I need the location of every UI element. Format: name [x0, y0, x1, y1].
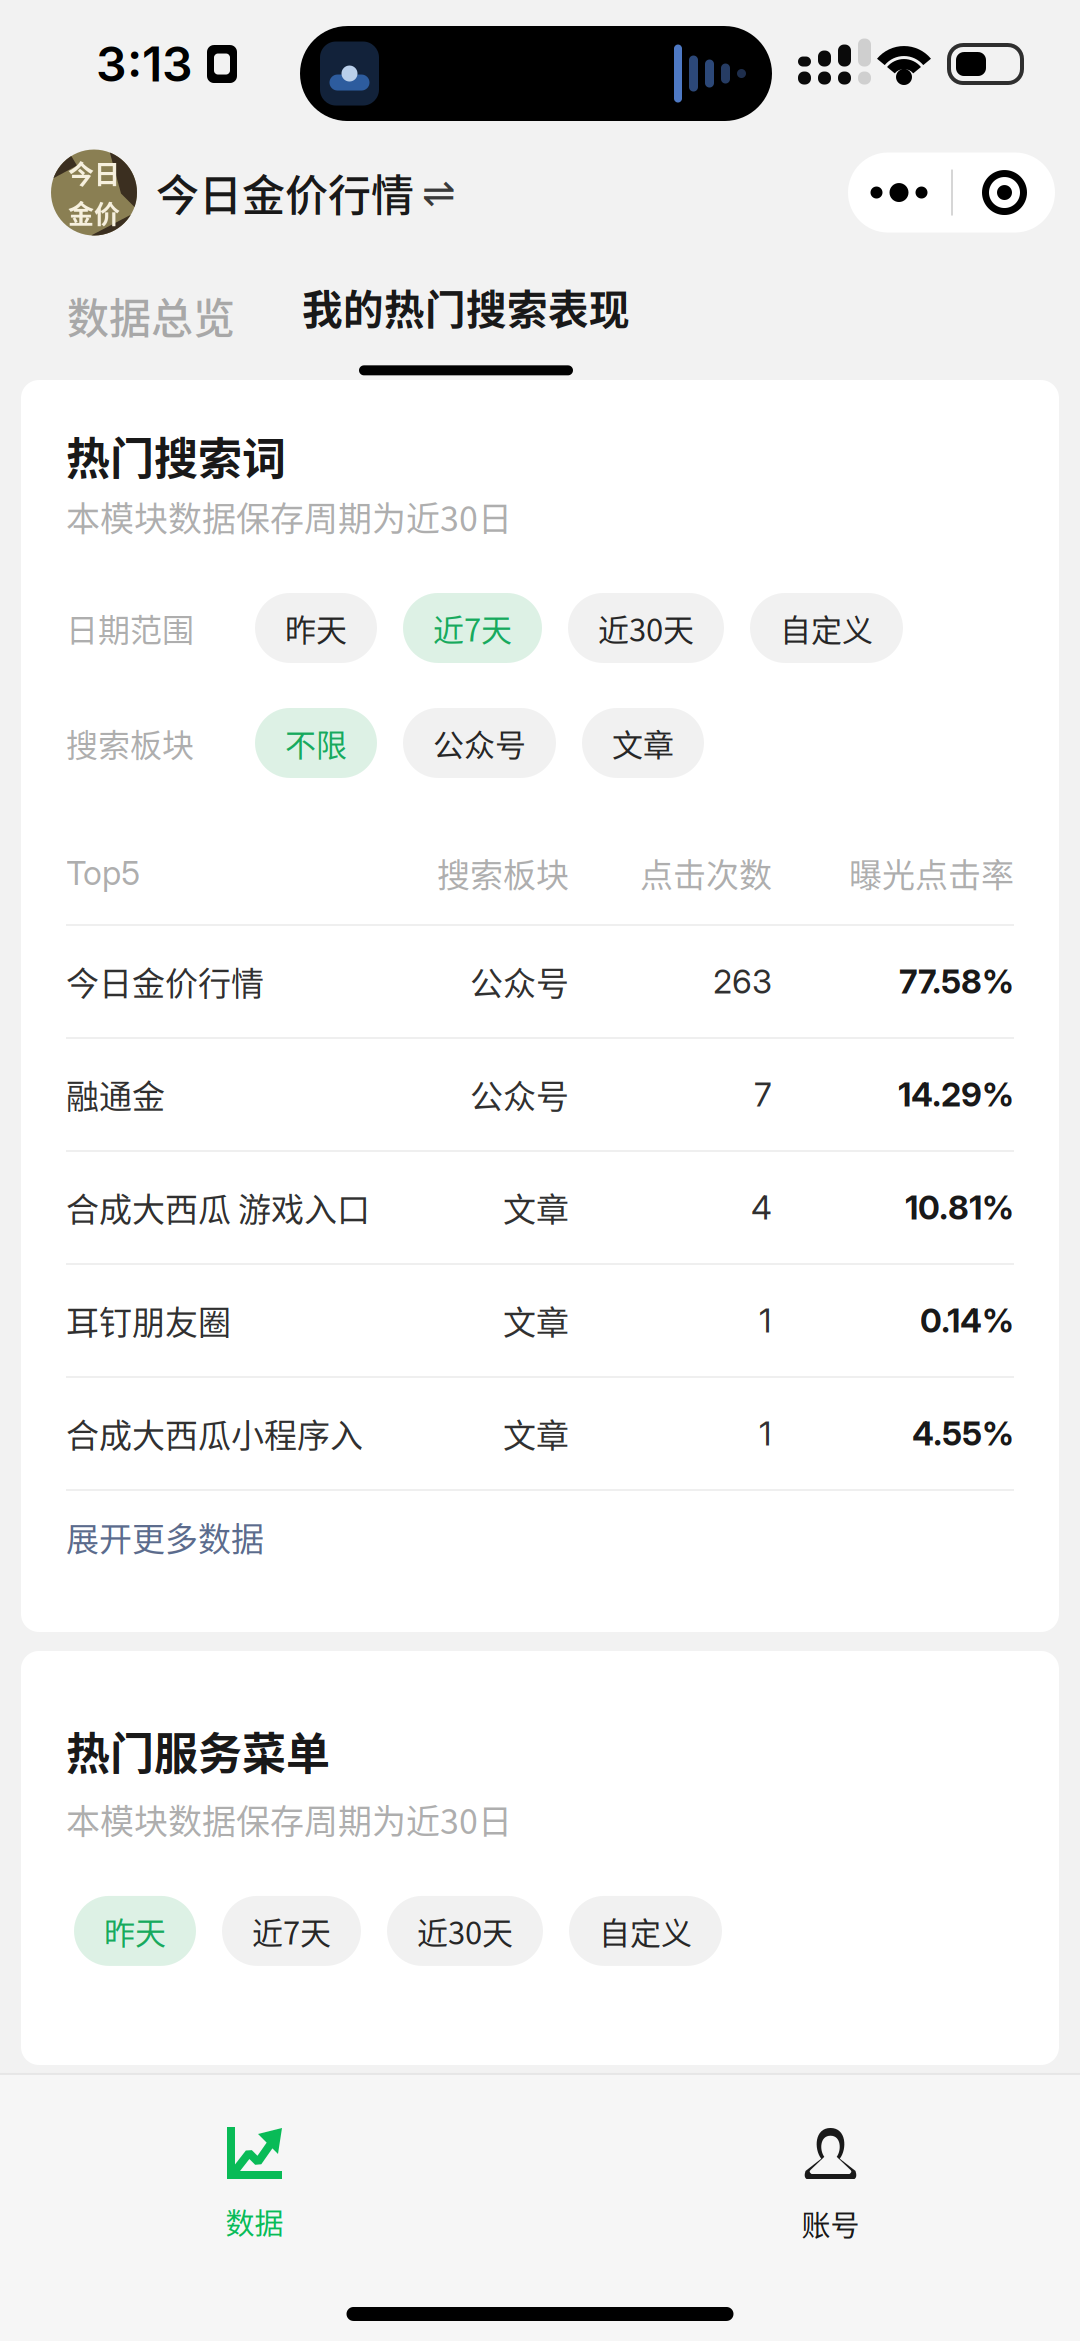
button[interactable]: 我的热门搜索表现 [302, 239, 630, 380]
staticText: 点击次数 [640, 849, 772, 897]
button[interactable]: 近30天 [568, 593, 724, 663]
staticText: 1 [759, 1413, 772, 1453]
staticText: 不限 [285, 720, 347, 765]
staticText: 展开更多数据 [66, 1513, 264, 1561]
staticText: 文章 [612, 720, 674, 765]
button[interactable]: 数据 [0, 2075, 513, 2261]
staticText: 1 [759, 1300, 772, 1340]
staticText: 文章 [503, 1184, 569, 1231]
button[interactable]: 公众号 [403, 708, 556, 778]
staticText: 近30天 [598, 605, 694, 650]
staticText: Top5 [66, 853, 140, 893]
staticText: 融通金 [66, 1071, 165, 1118]
staticText: 耳钉朋友圈 [66, 1297, 231, 1344]
staticText: 公众号 [470, 958, 569, 1005]
button[interactable]: 账号 [549, 2075, 1080, 2261]
staticText: 近7天 [252, 1908, 331, 1953]
staticText: 0.14% [920, 1300, 1014, 1340]
staticText: 热门搜索词 [66, 424, 286, 488]
staticText: 我的热门搜索表现 [302, 278, 630, 336]
button[interactable]: 近7天 [403, 593, 542, 663]
button[interactable]: 展开更多数据 [66, 1491, 1014, 1583]
staticText: 263 [713, 961, 772, 1001]
button[interactable]: 自定义 [750, 593, 903, 663]
staticText: 金价 [68, 193, 120, 231]
staticText: 曝光点击率 [849, 849, 1014, 897]
staticText: 数据 [225, 2201, 283, 2243]
button[interactable]: 近30天 [387, 1896, 543, 1966]
staticText: 昨天 [285, 605, 347, 650]
staticText: 昨天 [104, 1908, 166, 1953]
staticText: 数据总览 [67, 285, 235, 346]
staticText: 合成大西瓜 游戏入口 [66, 1184, 370, 1231]
staticText: 日期范围 [66, 605, 194, 651]
staticText: 4.55% [912, 1413, 1014, 1453]
staticText: 4 [751, 1187, 772, 1227]
button[interactable]: 近7天 [222, 1896, 361, 1966]
staticText: 公众号 [470, 1071, 569, 1118]
staticText: 本模块数据保存周期为近30日 [66, 492, 512, 541]
staticText: 文章 [503, 1410, 569, 1457]
staticText: 今日金价行情 [156, 161, 414, 224]
staticText: 10.81% [905, 1187, 1014, 1227]
staticText: 搜索板块 [66, 720, 194, 766]
staticText: 搜索板块 [437, 849, 569, 897]
staticText: 近30天 [417, 1908, 513, 1953]
button[interactable]: 不限 [255, 708, 377, 778]
staticText: 3:13 [96, 35, 193, 93]
staticText: 7 [754, 1074, 772, 1114]
staticText: 今日金价行情 [66, 958, 264, 1005]
staticText: 今日 [68, 154, 120, 191]
staticText: 合成大西瓜小程序入 [66, 1410, 363, 1457]
staticText: 公众号 [433, 720, 526, 765]
button[interactable]: 昨天 [255, 593, 377, 663]
staticText: 自定义 [780, 605, 873, 650]
button[interactable]: 自定义 [569, 1896, 722, 1966]
button[interactable]: 文章 [582, 708, 704, 778]
staticText: 自定义 [599, 1908, 692, 1953]
staticText: 账号 [801, 2203, 859, 2245]
staticText: 热门服务菜单 [66, 1719, 330, 1783]
staticText: 14.29% [898, 1074, 1014, 1114]
staticText: 本模块数据保存周期为近30日 [66, 1795, 512, 1844]
button[interactable]: 数据总览 [67, 239, 235, 380]
staticText: 文章 [503, 1297, 569, 1344]
staticText: 近7天 [433, 605, 512, 650]
button[interactable]: 昨天 [74, 1896, 196, 1966]
staticText: 77.58% [899, 961, 1014, 1001]
staticText: ⇌ [422, 169, 456, 216]
button[interactable]: More options [848, 152, 1055, 232]
